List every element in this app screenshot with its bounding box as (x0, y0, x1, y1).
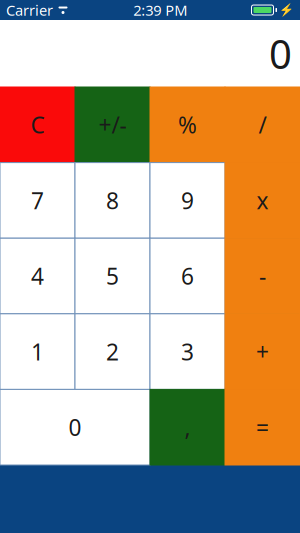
staticText: 1 (31, 336, 44, 367)
button[interactable]: +/- (75, 87, 150, 163)
button[interactable]: 4 (0, 238, 75, 314)
button[interactable]: = (225, 389, 300, 465)
button[interactable]: 6 (150, 238, 225, 314)
staticText: = (256, 412, 269, 442)
button[interactable]: 3 (150, 314, 225, 389)
staticText: Carrier (6, 0, 53, 20)
staticText: 0 (68, 412, 81, 442)
button[interactable]: 7 (0, 163, 75, 238)
staticText: - (259, 261, 266, 291)
button[interactable]: + (225, 314, 300, 389)
staticText: 0 (269, 27, 292, 80)
staticText: x (256, 185, 268, 215)
staticText: 3 (181, 336, 194, 367)
button[interactable]: 2 (75, 314, 150, 389)
staticText: ⚡ (279, 3, 294, 17)
button[interactable]: x (225, 163, 300, 238)
button[interactable]: - (225, 238, 300, 314)
staticText: + (256, 336, 269, 367)
staticText: C (30, 110, 44, 140)
button[interactable]: , (150, 389, 225, 465)
button[interactable]: 9 (150, 163, 225, 238)
staticText: / (258, 110, 266, 140)
staticText: +/- (98, 110, 126, 140)
staticText: 9 (181, 185, 194, 215)
staticText: % (178, 110, 197, 140)
staticText: 6 (181, 261, 194, 291)
button[interactable]: 5 (75, 238, 150, 314)
staticText: 5 (106, 261, 119, 291)
staticText: 7 (31, 185, 44, 215)
staticText: 2 (106, 336, 119, 367)
staticText: , (184, 412, 190, 442)
button[interactable]: 8 (75, 163, 150, 238)
button[interactable]: 1 (0, 314, 75, 389)
button[interactable]: 0 (0, 389, 150, 465)
staticText: 2:39 PM (133, 0, 187, 20)
staticText: 4 (31, 261, 44, 291)
button[interactable]: % (150, 87, 225, 163)
button[interactable]: C (0, 87, 75, 163)
staticText: 8 (106, 185, 119, 215)
button[interactable]: / (225, 87, 300, 163)
